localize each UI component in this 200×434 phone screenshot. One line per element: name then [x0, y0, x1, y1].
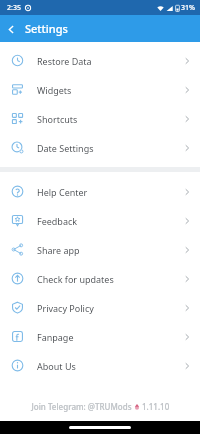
button[interactable]: Privacy Policy — [0, 293, 200, 322]
button[interactable]: Help Center — [0, 177, 200, 206]
button[interactable]: About Us — [0, 351, 200, 380]
staticText: Widgets — [37, 84, 183, 96]
button[interactable]: Widgets — [0, 75, 200, 104]
staticText: 2:35 — [7, 3, 21, 13]
staticText: Check for updates — [37, 273, 183, 285]
button[interactable]: Shortcuts — [0, 104, 200, 133]
staticText: Join Telegram: @TRUMods — [31, 401, 132, 412]
staticText: Share app — [37, 244, 183, 256]
button[interactable]: Restore Data — [0, 46, 200, 75]
staticText: Date Settings — [37, 142, 183, 154]
staticText: Shortcuts — [37, 113, 183, 125]
staticText: Settings — [25, 21, 68, 36]
button[interactable]: Check for updates — [0, 264, 200, 293]
button[interactable]: Share app — [0, 235, 200, 264]
staticText: Restore Data — [37, 55, 183, 67]
staticText: 1.11.10 — [142, 401, 170, 412]
button[interactable]: Date Settings — [0, 133, 200, 162]
staticText: Feedback — [37, 215, 183, 227]
staticText: Privacy Policy — [37, 302, 183, 314]
staticText: Help Center — [37, 186, 183, 198]
staticText: About Us — [37, 360, 183, 372]
button[interactable]: Fanpage — [0, 322, 200, 351]
staticText: Fanpage — [37, 331, 183, 343]
staticText: 31% — [181, 3, 195, 13]
button[interactable]: Back — [0, 18, 22, 40]
button[interactable]: Feedback — [0, 206, 200, 235]
